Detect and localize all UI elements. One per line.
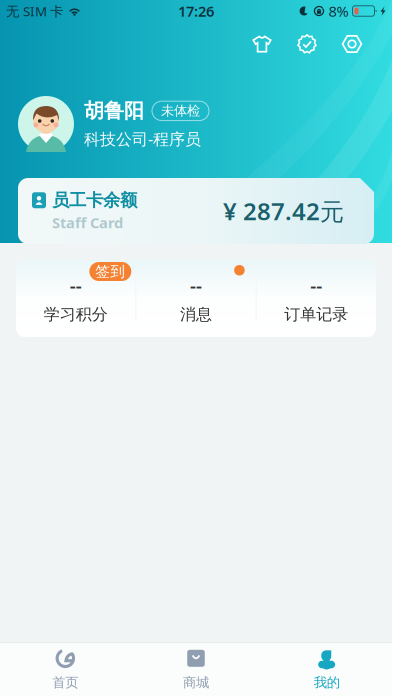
button[interactable]: 员工卡余额	[18, 178, 374, 244]
button[interactable]: 首页	[0, 643, 131, 696]
button[interactable]: --	[16, 260, 135, 337]
staticText: 17:26	[178, 1, 214, 21]
staticText: 签到	[95, 262, 125, 280]
staticText: --	[190, 273, 202, 298]
staticText: 消息	[180, 305, 212, 324]
button[interactable]: 健康认证	[290, 27, 324, 61]
staticText: Staff Card	[52, 213, 123, 232]
staticText: 无 SIM 卡	[6, 2, 63, 20]
button[interactable]: 商城	[131, 643, 261, 696]
staticText: --	[70, 273, 82, 298]
button[interactable]: 工服	[245, 27, 279, 61]
button[interactable]: 设置	[335, 27, 369, 61]
staticText: 8%	[328, 1, 348, 21]
staticText: 首页	[52, 674, 78, 691]
staticText: ¥ 287.42元	[223, 195, 344, 227]
staticText: 商城	[183, 674, 209, 691]
button[interactable]: --	[257, 260, 376, 337]
staticText: --	[310, 273, 322, 298]
staticText: 员工卡余额	[52, 190, 137, 211]
staticText: 学习积分	[44, 305, 108, 324]
button[interactable]: --	[136, 260, 256, 337]
staticText: 我的	[314, 674, 340, 691]
staticText: 科技公司-程序员	[84, 128, 201, 149]
button[interactable]: 胡鲁阳	[0, 96, 392, 152]
staticText: 未体检	[161, 103, 200, 119]
staticText: 胡鲁阳	[84, 99, 144, 123]
button[interactable]: 我的	[261, 643, 392, 696]
staticText: 订单记录	[284, 305, 348, 324]
